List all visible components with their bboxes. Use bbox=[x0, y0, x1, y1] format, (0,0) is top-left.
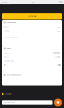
button[interactable]: Voir mon billet bbox=[2, 13, 62, 19]
button[interactable]: Billet bbox=[2, 63, 62, 67]
staticText: Départ bbox=[4, 26, 9, 28]
button[interactable]: Classe bbox=[2, 55, 62, 59]
staticText: Lyon entrée bbox=[7, 22, 16, 23]
staticText: 9:41 bbox=[31, 1, 34, 3]
staticText: Train 6212 Voiture 8 bbox=[4, 36, 18, 38]
staticText: Mon voyage bbox=[2, 3, 11, 5]
staticText: Transfert bbox=[4, 93, 11, 95]
staticText: 14:05 bbox=[56, 30, 60, 32]
button[interactable]: Train 6212 Voiture 8 bbox=[2, 35, 62, 39]
staticText: Arrivée bbox=[4, 30, 10, 32]
staticText: 12:40 bbox=[56, 26, 60, 28]
staticText: 24A fenêtre bbox=[52, 52, 60, 54]
staticText: 1re std bbox=[55, 56, 60, 58]
staticText: Billet bbox=[4, 64, 6, 66]
staticText: Votre message… bbox=[3, 102, 15, 103]
staticText: Correspondance bbox=[7, 74, 21, 76]
staticText: Classe bbox=[4, 56, 9, 58]
button[interactable]: Arrivée bbox=[2, 29, 62, 33]
staticText: Système Centre bbox=[4, 60, 15, 62]
staticText: Carrier bbox=[2, 1, 8, 3]
button[interactable]: Départ bbox=[2, 25, 62, 29]
staticText: Place bbox=[7, 48, 11, 49]
staticText: Voir mon billet bbox=[28, 15, 36, 17]
staticText: Voiture bbox=[4, 52, 9, 54]
button[interactable]: Voiture bbox=[2, 51, 62, 55]
button[interactable]: Send bbox=[54, 98, 62, 106]
button[interactable]: Système Centre bbox=[2, 59, 62, 63]
staticText: e-Billet bbox=[57, 64, 60, 66]
staticText: 100% bbox=[58, 1, 62, 3]
